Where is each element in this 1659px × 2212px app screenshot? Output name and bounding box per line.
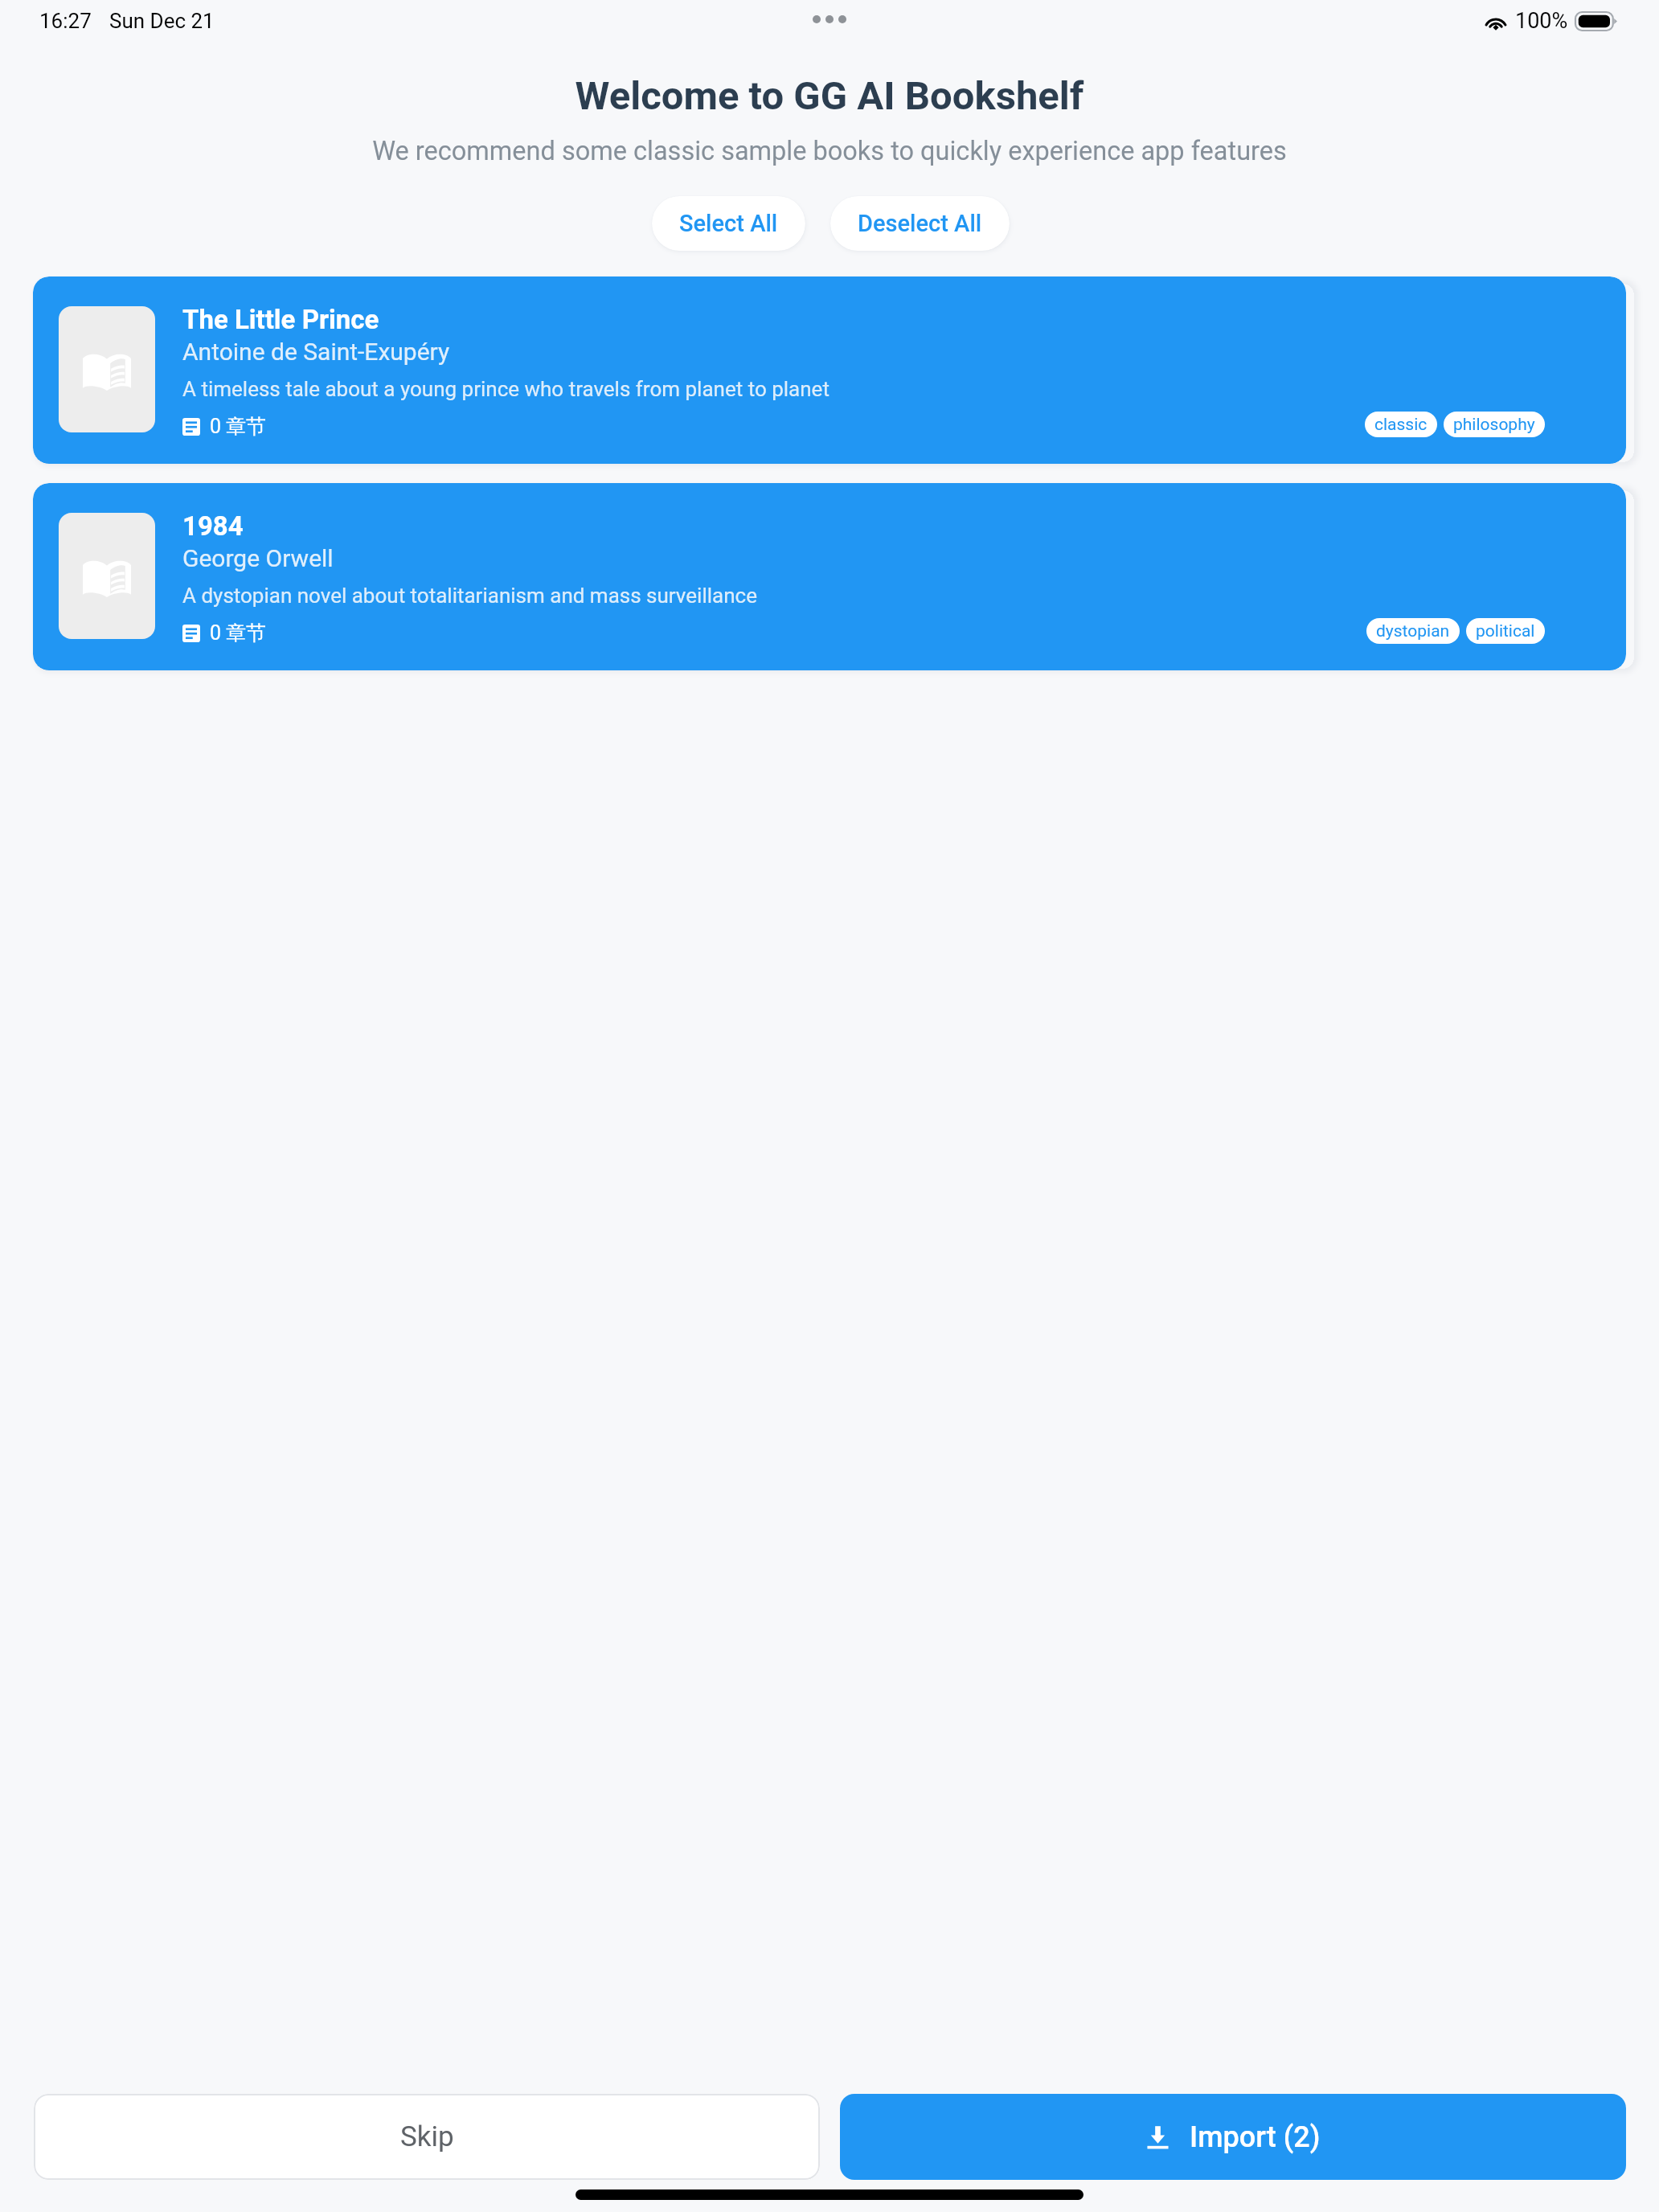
staticText: Deselect All (858, 210, 982, 237)
staticText: We recommend some classic sample books t… (0, 136, 1659, 166)
button[interactable]: Deselect All (830, 196, 1010, 251)
staticText: political (1476, 621, 1535, 641)
staticText: Skip (400, 2120, 454, 2153)
staticText: Antoine de Saint-Exupéry (182, 338, 450, 366)
staticText: Welcome to GG AI Bookshelf (0, 73, 1659, 119)
staticText: George Orwell (182, 544, 334, 572)
staticText: 0 章节 (210, 414, 267, 439)
staticText: A timeless tale about a young prince who… (182, 377, 829, 401)
button[interactable]: philosophy (1444, 412, 1545, 437)
other: Book cover (59, 306, 155, 432)
staticText: 1984 (182, 510, 244, 542)
other: Book cover (59, 513, 155, 639)
staticText: The Little Prince (182, 304, 379, 335)
staticText: A dystopian novel about totalitarianism … (182, 584, 757, 608)
button[interactable]: 1984 by George Orwell, selected (33, 483, 1626, 670)
staticText: Import (2) (1190, 2120, 1321, 2154)
staticText: dystopian (1376, 621, 1450, 641)
staticText: 100% (1515, 8, 1568, 34)
staticText: 16:27 (39, 9, 92, 33)
button[interactable]: dystopian (1366, 618, 1460, 644)
staticText: classic (1374, 415, 1428, 435)
button[interactable]: classic (1365, 412, 1437, 437)
button[interactable]: The Little Prince by Antoine de Saint-Ex… (33, 276, 1626, 464)
button[interactable]: Select All (652, 196, 805, 251)
button[interactable]: Skip (34, 2094, 820, 2180)
staticText: Sun Dec 21 (109, 9, 215, 33)
staticText: philosophy (1453, 415, 1535, 435)
staticText: Select All (679, 210, 778, 237)
staticText: 0 章节 (210, 621, 267, 645)
button[interactable]: political (1466, 618, 1545, 644)
button[interactable]: Import (2) (840, 2094, 1626, 2180)
